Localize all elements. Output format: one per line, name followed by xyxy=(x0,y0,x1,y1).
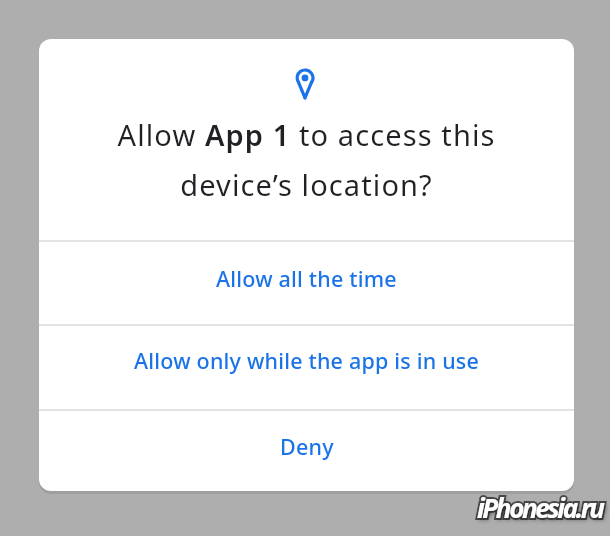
staticText: iPhonesia.ru xyxy=(477,490,603,525)
staticText: Deny xyxy=(280,432,334,461)
button[interactable]: Allow all the time xyxy=(39,242,574,324)
staticText: Allow App 1 to access this device’s loca… xyxy=(39,115,574,205)
button[interactable]: Deny xyxy=(39,411,574,491)
staticText: iPhonesia.ru xyxy=(477,490,603,525)
staticText: Allow all the time xyxy=(216,264,397,293)
staticText: Allow only while the app is in use xyxy=(134,346,480,375)
button[interactable]: Allow only while the app is in use xyxy=(39,326,574,409)
